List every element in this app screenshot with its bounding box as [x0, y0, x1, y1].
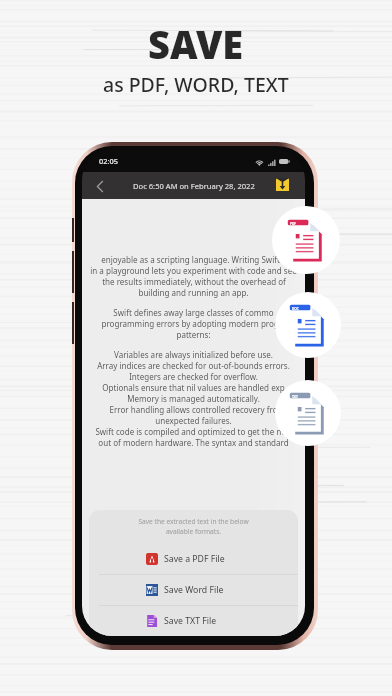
staticText: Save a PDF File: [164, 553, 225, 565]
button[interactable]: Save a PDF File: [89, 544, 298, 574]
staticText: Memory is managed automatically.: [127, 393, 260, 404]
staticText: 02:05: [99, 156, 118, 166]
staticText: Save TXT File: [164, 615, 217, 627]
staticText: enjoyable as a scripting language. Writi…: [101, 254, 286, 265]
staticText: Doc 6:50 AM on February 28, 2022: [133, 181, 255, 191]
staticText: unexpected failures.: [155, 415, 232, 426]
staticText: Save Word File: [164, 584, 224, 596]
staticText: DOC: [292, 307, 299, 311]
staticText: Swift defines away large classes of comm…: [113, 307, 274, 318]
staticText: Integers are checked for overflow.: [129, 371, 258, 382]
staticText: TXT: [292, 395, 298, 399]
button[interactable]: Back: [88, 174, 112, 198]
staticText: Swift code is compiled and optimized to …: [95, 426, 293, 437]
staticText: Save the extracted text in the below ava…: [89, 517, 298, 536]
staticText: Variables are always initialized before …: [114, 349, 273, 360]
staticText: programming errors by adopting modern pr…: [101, 318, 287, 329]
staticText: in a playground lets you experiment with…: [90, 265, 297, 276]
button[interactable]: Save TXT File: [89, 606, 298, 636]
staticText: patterns:: [176, 329, 211, 340]
staticText: as PDF, WORD, TEXT: [103, 71, 289, 98]
button[interactable]: Save Word File: [89, 575, 298, 605]
staticText: out of modern hardware. The syntax and s…: [98, 437, 289, 448]
staticText: the results immediately, without the ove…: [102, 276, 286, 287]
button[interactable]: Save document: [272, 174, 292, 194]
staticText: building and running an app.: [138, 287, 249, 298]
staticText: Array indices are checked for out-of-bou…: [97, 360, 290, 371]
staticText: Optionals ensure that nil values are han…: [102, 382, 285, 393]
staticText: PDF: [290, 222, 297, 226]
staticText: Error handling allows controlled recover…: [109, 404, 278, 415]
staticText: SAVE: [148, 18, 244, 70]
